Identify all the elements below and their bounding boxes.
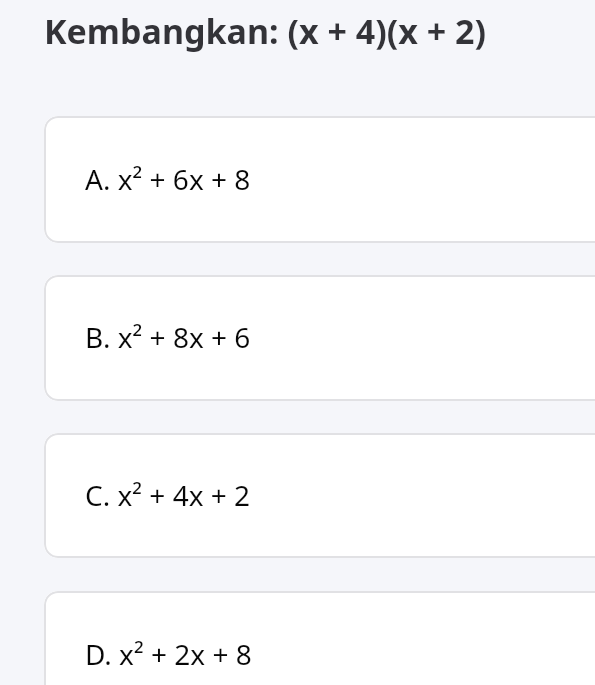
button[interactable]: D. x² + 2x + 8 <box>44 591 595 685</box>
staticText: Kembangkan: (x + 4)(x + 2) <box>44 8 486 54</box>
button[interactable]: C. x² + 4x + 2 <box>44 433 595 558</box>
staticText: B. x² + 8x + 6 <box>85 318 251 356</box>
staticText: A. x² + 6x + 8 <box>85 160 251 198</box>
button[interactable]: A. x² + 6x + 8 <box>44 116 595 243</box>
staticText: D. x² + 2x + 8 <box>85 635 252 673</box>
button[interactable]: B. x² + 8x + 6 <box>44 275 595 401</box>
staticText: C. x² + 4x + 2 <box>85 476 251 514</box>
